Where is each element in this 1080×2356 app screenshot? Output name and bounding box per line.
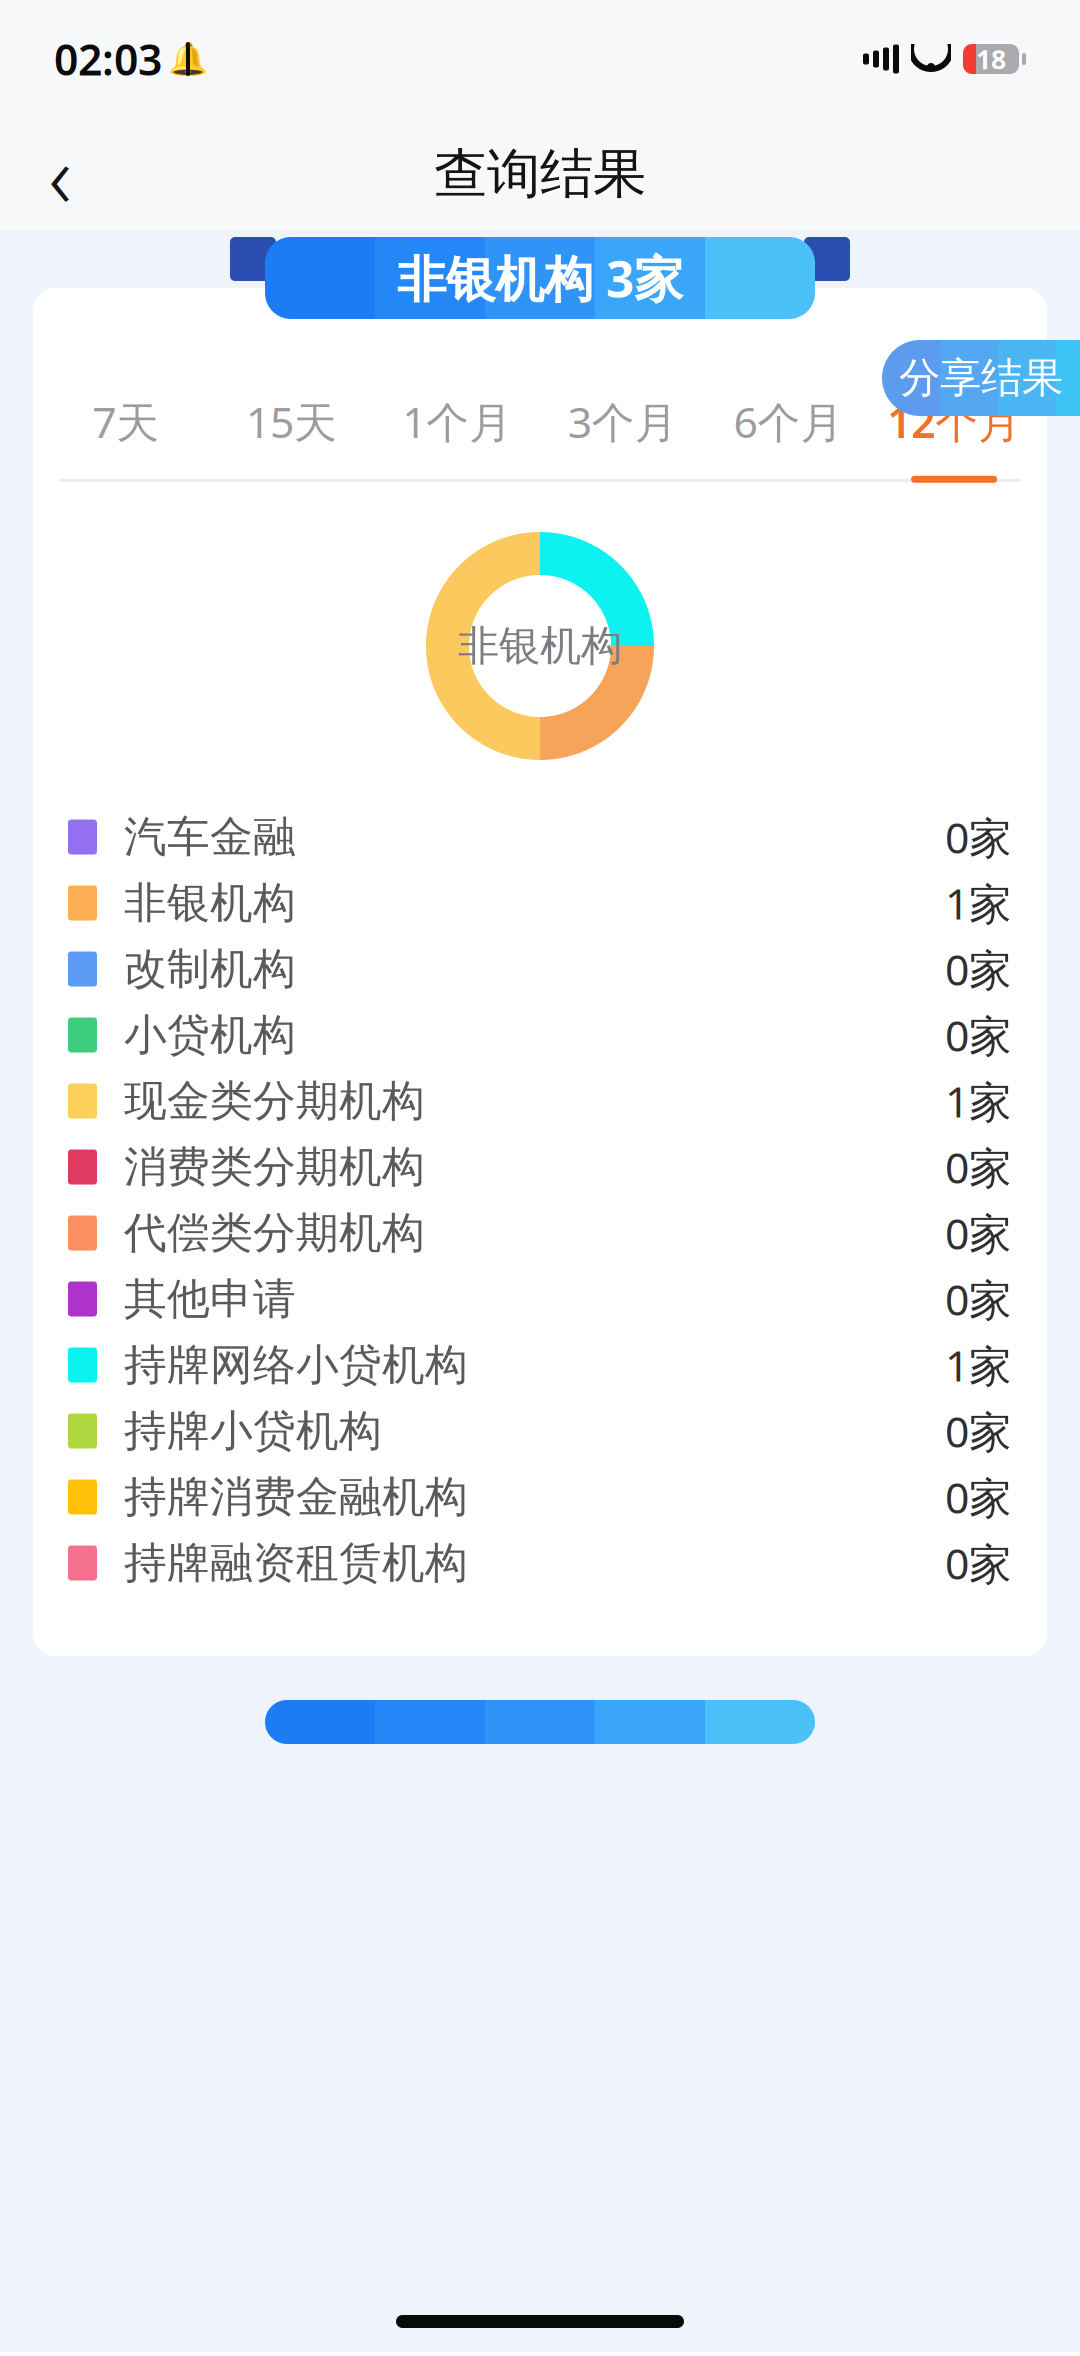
staticText: 12个月 — [887, 393, 1021, 450]
staticText: 7天 — [92, 393, 159, 450]
staticText: 3个月 — [568, 393, 678, 450]
staticText: 改制机构 — [124, 943, 296, 995]
staticText: 1个月 — [402, 393, 512, 450]
staticText: 其他申请 — [124, 1273, 296, 1325]
button[interactable]: 6个月 — [706, 396, 871, 480]
staticText: 02:03 — [54, 31, 162, 87]
staticText: 持牌融资租赁机构 — [124, 1537, 468, 1589]
staticText: 6个月 — [733, 393, 843, 450]
button[interactable]: 7天 — [43, 396, 209, 480]
staticText: 分享结果 — [899, 353, 1063, 403]
staticText: 0家 — [945, 809, 1012, 865]
staticText: 非银机构 — [458, 621, 622, 671]
staticText: 非银机构 3家 — [397, 245, 683, 311]
staticText: 0家 — [945, 1205, 1012, 1261]
staticText: 1家 — [945, 1337, 1012, 1393]
staticText: 0家 — [945, 1535, 1012, 1591]
staticText: 18 — [976, 41, 1006, 77]
staticText: 持牌消费金融机构 — [124, 1471, 468, 1523]
staticText: 0家 — [945, 1139, 1012, 1195]
button[interactable]: 1个月 — [374, 396, 540, 480]
staticText: 0家 — [945, 1403, 1012, 1459]
button[interactable]: 3个月 — [540, 396, 706, 480]
staticText: 消费类分期机构 — [124, 1141, 425, 1193]
staticText: 非银机构 — [124, 877, 296, 929]
staticText: 汽车金融 — [124, 811, 296, 863]
staticText: 持牌网络小贷机构 — [124, 1339, 468, 1391]
staticText: 代偿类分期机构 — [124, 1207, 425, 1259]
staticText: 查询结果 — [434, 141, 646, 207]
staticText: 15天 — [246, 393, 337, 450]
staticText: 0家 — [945, 1469, 1012, 1525]
staticText: 0家 — [945, 1271, 1012, 1327]
staticText: ‹ — [48, 116, 71, 232]
staticText: 现金类分期机构 — [124, 1075, 425, 1127]
button[interactable]: 返回 — [14, 128, 106, 220]
staticText: 🔔 — [168, 41, 208, 77]
button[interactable]: 15天 — [209, 396, 374, 480]
staticText: 0家 — [945, 1007, 1012, 1063]
staticText: 持牌小贷机构 — [124, 1405, 382, 1457]
staticText: 1家 — [945, 875, 1012, 931]
button[interactable]: 分享结果 — [882, 340, 1080, 416]
staticText: 1家 — [945, 1073, 1012, 1129]
staticText: 小贷机构 — [124, 1009, 296, 1061]
button[interactable]: 12个月 — [871, 396, 1037, 480]
staticText: 0家 — [945, 941, 1012, 997]
